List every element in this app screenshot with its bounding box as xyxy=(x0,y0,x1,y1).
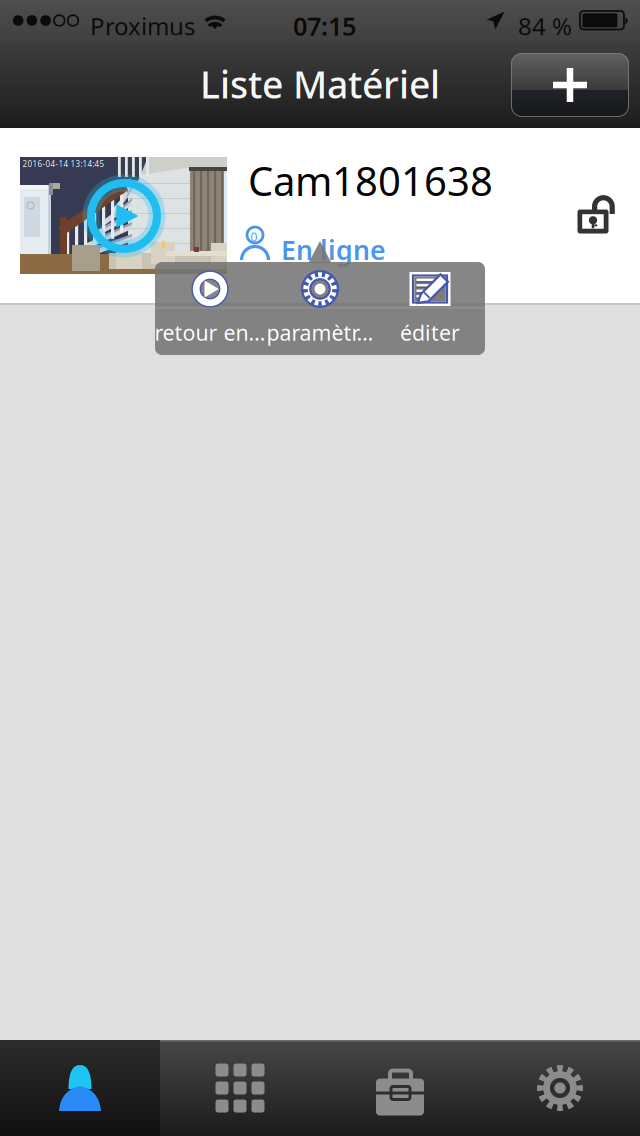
staticText: Cam1801638 xyxy=(248,154,493,207)
staticText: 07:15 xyxy=(293,9,356,43)
staticText: En ligne xyxy=(281,232,386,267)
button[interactable]: Réglages xyxy=(480,1040,640,1136)
staticText: Proximus xyxy=(90,10,195,42)
button[interactable]: 2016-04-14 13:14:45 xyxy=(0,128,640,303)
button[interactable]: Mallette xyxy=(320,1040,480,1136)
staticText: 0 xyxy=(250,229,257,245)
button[interactable]: paramètres xyxy=(265,262,375,355)
staticText: éditer xyxy=(400,318,460,347)
button[interactable]: Contacts xyxy=(0,1040,160,1136)
button[interactable]: éditer xyxy=(375,262,485,355)
staticText: paramètr… xyxy=(266,318,373,347)
staticText: 84 % xyxy=(518,10,572,42)
staticText: 2016-04-14 13:14:45 xyxy=(22,158,104,169)
staticText: retour en… xyxy=(154,318,265,347)
staticText: Liste Matériel xyxy=(200,59,440,109)
button[interactable]: Ajouter xyxy=(511,53,629,117)
button[interactable]: Grille xyxy=(160,1040,320,1136)
button[interactable]: retour en arrière xyxy=(155,262,265,355)
